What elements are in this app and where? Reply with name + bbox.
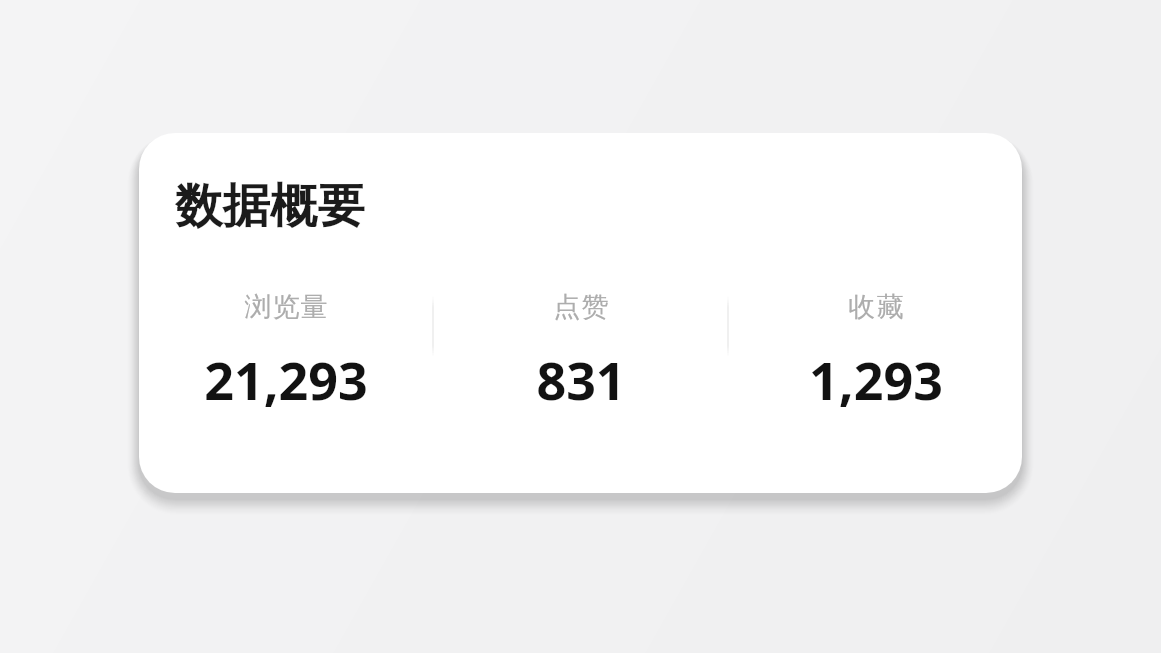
button[interactable]: 浏览量	[139, 290, 432, 410]
staticText: 点赞	[553, 290, 609, 324]
staticText: 数据概要	[175, 177, 365, 236]
staticText: 831	[536, 344, 626, 410]
staticText: 1,293	[809, 344, 943, 410]
staticText: 浏览量	[244, 290, 328, 324]
button[interactable]: 点赞	[434, 290, 727, 410]
button[interactable]: 数据概要	[139, 133, 1022, 493]
staticText: 21,293	[204, 344, 368, 410]
staticText: 收藏	[848, 290, 904, 324]
button[interactable]: 收藏	[729, 290, 1022, 410]
